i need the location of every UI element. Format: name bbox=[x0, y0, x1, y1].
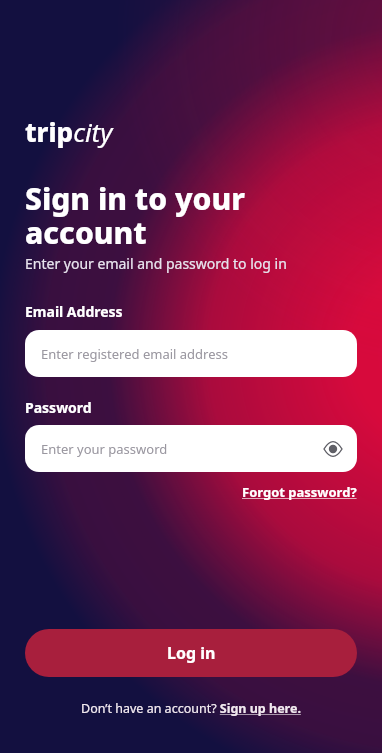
button[interactable]: Forgot password? bbox=[242, 483, 357, 501]
staticText: Sign in to your account bbox=[25, 178, 245, 252]
staticText: Password bbox=[25, 398, 92, 417]
staticText: Log in bbox=[167, 642, 216, 664]
staticText: Enter your password bbox=[41, 440, 324, 458]
button[interactable]: Enter registered email address bbox=[25, 330, 357, 377]
staticText: Enter your email and password to log in bbox=[25, 254, 287, 273]
button[interactable]: Enter your password bbox=[25, 425, 357, 472]
staticText: Don’t have an account? Sign up here. bbox=[81, 700, 301, 717]
staticText: Enter registered email address bbox=[41, 345, 228, 363]
button[interactable]: Don’t have an account? Sign up here. bbox=[25, 700, 357, 717]
staticText: Email Address bbox=[25, 302, 123, 321]
staticText: tripcity bbox=[25, 114, 113, 149]
button[interactable]: Log in bbox=[25, 629, 357, 677]
